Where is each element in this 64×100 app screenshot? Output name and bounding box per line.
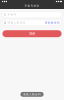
button[interactable]: 登录 — [2, 30, 62, 37]
staticText: 手机号 — [7, 13, 16, 16]
staticText: 获取验证码 — [45, 21, 60, 24]
staticText: 手机号登录 — [24, 4, 39, 8]
button[interactable]: 请输入验证码 — [2, 19, 62, 26]
staticText: 请输入验证码 — [23, 93, 41, 96]
staticText: 登录 — [29, 31, 35, 36]
staticText: 请输入验证码 — [7, 21, 25, 24]
button[interactable]: 手机号 — [2, 11, 62, 18]
